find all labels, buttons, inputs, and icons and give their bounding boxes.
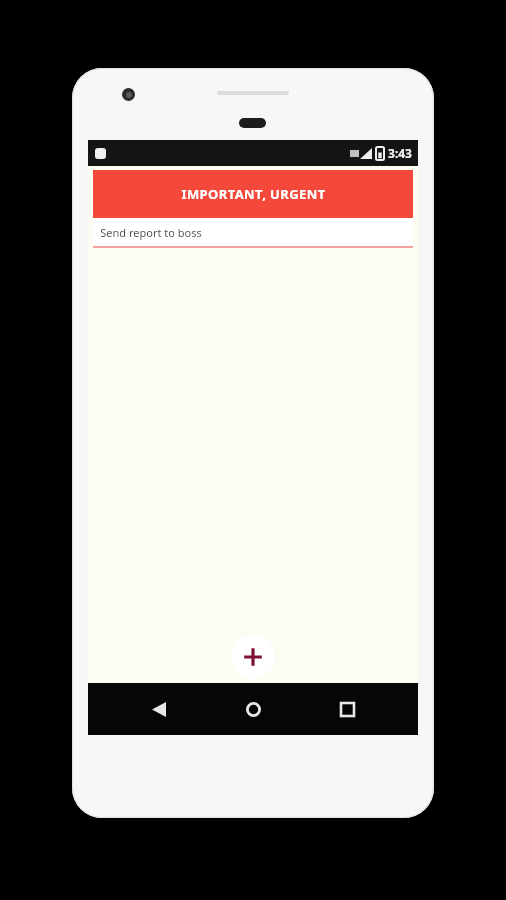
staticText: IMPORTANT, URGENT bbox=[181, 185, 326, 203]
staticText: Send report to boss bbox=[100, 225, 202, 240]
button[interactable]: IMPORTANT, URGENT bbox=[93, 170, 413, 218]
button[interactable]: Add task bbox=[231, 635, 275, 679]
button[interactable]: Back bbox=[136, 686, 182, 732]
button[interactable]: Home bbox=[230, 686, 276, 732]
button[interactable]: Send report to boss bbox=[93, 218, 413, 248]
button[interactable]: Recent apps bbox=[324, 686, 370, 732]
staticText: 3:43 bbox=[388, 145, 412, 161]
